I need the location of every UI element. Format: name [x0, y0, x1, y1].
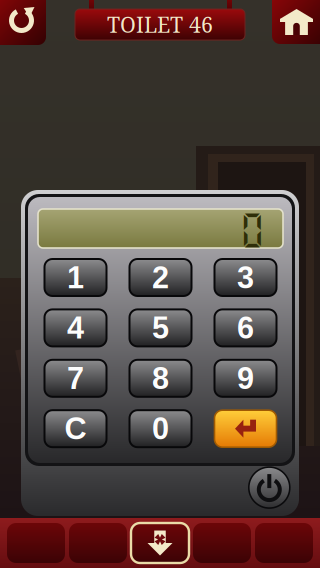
staticText: 6: [237, 311, 254, 345]
staticText: 0: [152, 412, 169, 446]
button[interactable]: 8: [129, 360, 191, 397]
button[interactable]: Enter code: [214, 410, 276, 447]
staticText: 9: [237, 361, 254, 395]
button[interactable]: Empty inventory slot: [7, 523, 65, 563]
button[interactable]: C: [44, 410, 106, 447]
staticText: TOILET 46: [107, 10, 213, 39]
button[interactable]: 9: [214, 360, 276, 397]
button[interactable]: 6: [214, 309, 276, 346]
button[interactable]: 2: [129, 259, 191, 296]
button[interactable]: Empty inventory slot: [193, 523, 251, 563]
staticText: 5: [152, 311, 169, 345]
staticText: 3: [237, 260, 254, 295]
button[interactable]: 4: [44, 309, 106, 346]
staticText: 1: [67, 260, 84, 295]
button[interactable]: Home: [272, 0, 320, 44]
staticText: C: [64, 412, 86, 446]
button[interactable]: 1: [44, 259, 106, 296]
staticText: 8: [152, 361, 169, 395]
staticText: 7: [67, 361, 84, 395]
button[interactable]: Empty inventory slot: [255, 523, 313, 563]
staticText: 0: [239, 208, 266, 251]
button[interactable]: Restart level: [0, 0, 46, 45]
button[interactable]: 3: [214, 259, 276, 296]
button[interactable]: 7: [44, 360, 106, 397]
button[interactable]: Stow inventory: [131, 523, 189, 563]
staticText: 2: [152, 260, 169, 295]
button[interactable]: Empty inventory slot: [69, 523, 127, 563]
button[interactable]: 0: [129, 410, 191, 447]
button[interactable]: 5: [129, 309, 191, 346]
staticText: 4: [67, 311, 84, 345]
